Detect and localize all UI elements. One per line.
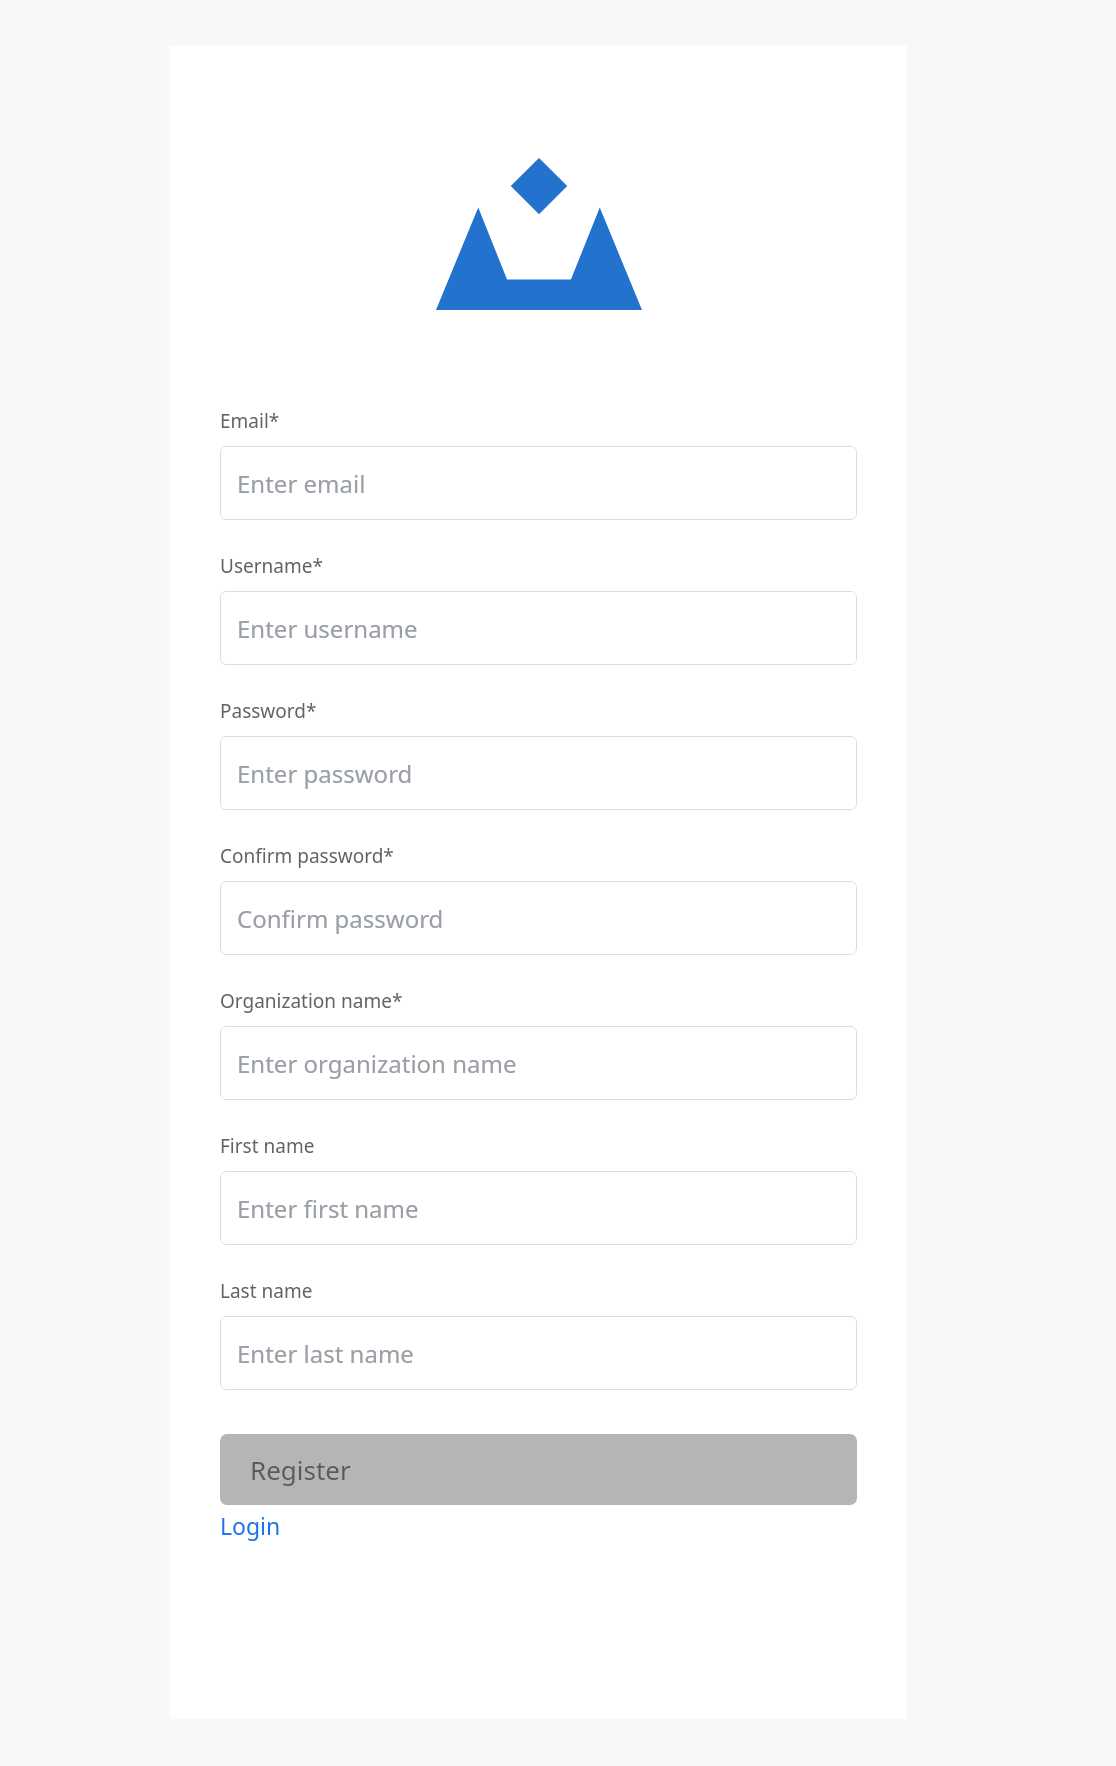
staticText: Confirm password [237, 902, 444, 935]
staticText: Organization name* [220, 988, 403, 1014]
button[interactable]: Enter email [220, 446, 857, 520]
staticText: Register [250, 1452, 351, 1487]
staticText: Password* [220, 698, 317, 724]
button[interactable]: Enter organization name [220, 1026, 857, 1100]
button[interactable]: Enter last name [220, 1316, 857, 1390]
staticText: Enter first name [237, 1192, 419, 1225]
staticText: Login [220, 1510, 281, 1541]
button[interactable]: Enter first name [220, 1171, 857, 1245]
staticText: Email* [220, 408, 280, 434]
staticText: Enter email [237, 467, 366, 500]
staticText: First name [220, 1133, 315, 1159]
staticText: Enter username [237, 612, 418, 645]
staticText: Confirm password* [220, 843, 394, 869]
staticText: Enter password [237, 757, 413, 790]
button[interactable]: Login [220, 1510, 281, 1541]
staticText: Enter organization name [237, 1047, 517, 1080]
other: App logo [436, 158, 642, 310]
button[interactable]: Register [220, 1434, 857, 1505]
staticText: Last name [220, 1278, 313, 1304]
staticText: Enter last name [237, 1337, 414, 1370]
staticText: Username* [220, 553, 323, 579]
button[interactable]: Enter password [220, 736, 857, 810]
button[interactable]: Enter username [220, 591, 857, 665]
button[interactable]: Confirm password [220, 881, 857, 955]
